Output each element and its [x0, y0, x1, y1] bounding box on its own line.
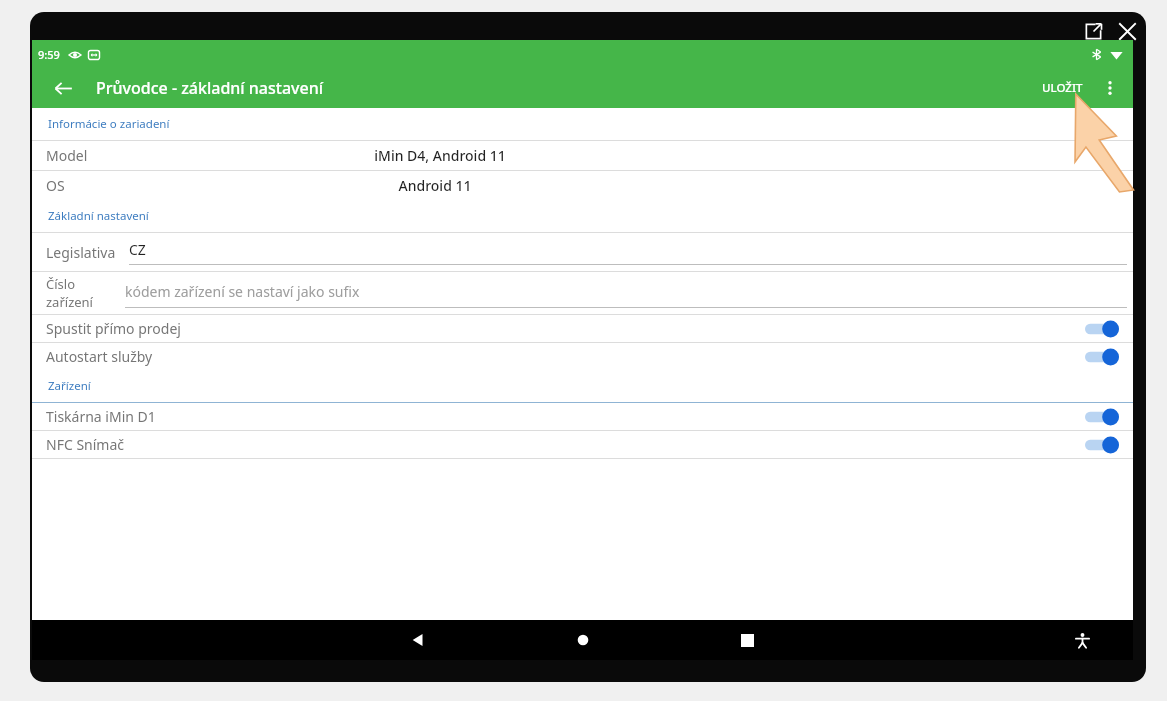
- button[interactable]: NFC Snímač: [1085, 435, 1119, 455]
- button[interactable]: Accessibility: [1065, 623, 1099, 657]
- button[interactable]: Back: [398, 620, 438, 660]
- button[interactable]: Základní nastavení: [32, 200, 1133, 232]
- button[interactable]: Home: [563, 620, 603, 660]
- staticText: Základní nastavení: [48, 208, 149, 224]
- staticText: zařízení: [46, 293, 93, 311]
- button[interactable]: Informácie o zariadení: [32, 108, 1133, 140]
- button[interactable]: Tiskárna iMin D1: [1085, 407, 1119, 427]
- button[interactable]: Recent apps: [727, 620, 767, 660]
- button[interactable]: Spustit přímo prodej: [1085, 319, 1119, 339]
- staticText: Legislativa: [46, 243, 116, 262]
- button[interactable]: NFC Snímač: [32, 431, 1133, 458]
- staticText: CZ: [129, 240, 146, 259]
- staticText: OS: [46, 176, 65, 195]
- button[interactable]: Autostart služby: [32, 343, 1133, 370]
- button[interactable]: Spustit přímo prodej: [32, 315, 1133, 342]
- staticText: 9:59: [38, 47, 60, 62]
- staticText: Model: [46, 146, 88, 165]
- staticText: Autostart služby: [46, 347, 153, 366]
- button[interactable]: Zařízení: [32, 370, 1133, 402]
- staticText: iMin D4, Android 11: [320, 146, 560, 165]
- button[interactable]: OS: [32, 171, 1133, 200]
- staticText: kódem zařízení se nastaví jako sufix: [125, 282, 360, 301]
- staticText: Tiskárna iMin D1: [46, 407, 156, 426]
- button[interactable]: Close: [1112, 16, 1142, 46]
- button[interactable]: Open in new window: [1078, 16, 1108, 46]
- staticText: ULOŽIT: [1042, 80, 1083, 96]
- button[interactable]: Autostart služby: [1085, 347, 1119, 367]
- button[interactable]: More options: [1095, 73, 1125, 103]
- staticText: Informácie o zariadení: [48, 116, 170, 132]
- button[interactable]: Back: [46, 71, 80, 105]
- staticText: Průvodce - základní nastavení: [96, 77, 324, 99]
- button[interactable]: Model: [32, 141, 1133, 170]
- button[interactable]: Tiskárna iMin D1: [32, 403, 1133, 430]
- button[interactable]: ULOŽIT: [1032, 72, 1093, 104]
- staticText: Android 11: [315, 176, 555, 195]
- staticText: NFC Snímač: [46, 435, 125, 454]
- staticText: Číslo: [46, 275, 76, 293]
- staticText: Spustit přímo prodej: [46, 319, 181, 338]
- staticText: Zařízení: [48, 378, 91, 394]
